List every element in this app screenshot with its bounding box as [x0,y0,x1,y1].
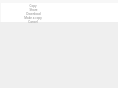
staticText: Make a copy [24,16,42,20]
staticText: Share [29,8,38,12]
staticText: Download [26,12,41,16]
staticText: Copy [29,4,37,8]
staticText: Cancel [28,20,38,24]
